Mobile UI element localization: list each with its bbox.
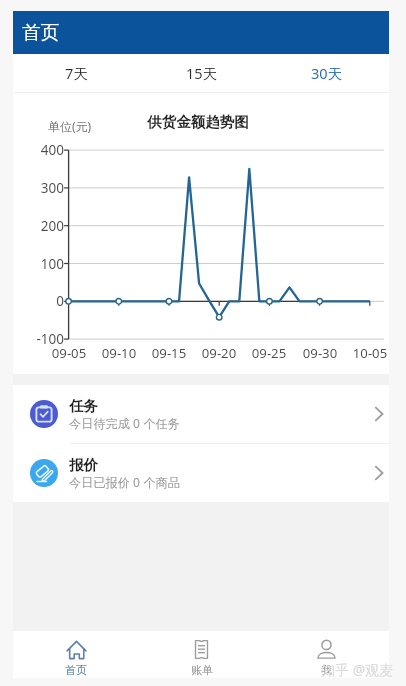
staticText: 今日待完成 0 个任务 (69, 415, 180, 432)
staticText: 0 (23, 292, 64, 310)
staticText: 300 (23, 179, 64, 197)
staticText: 09-10 (95, 344, 143, 362)
button[interactable]: 15天 (139, 54, 264, 92)
button[interactable]: 首页 (13, 11, 389, 54)
staticText: 7天 (65, 63, 88, 83)
button[interactable]: 任务 (13, 385, 389, 443)
staticText: 09-20 (195, 344, 243, 362)
staticText: 30天 (311, 63, 343, 83)
staticText: 09-25 (245, 344, 293, 362)
staticText: 首页 (65, 663, 87, 677)
staticText: 单位(元) (48, 118, 92, 134)
staticText: 09-05 (45, 344, 93, 362)
staticText: 今日已报价 0 个商品 (69, 474, 180, 491)
button[interactable]: 7天 (13, 54, 139, 92)
staticText: 400 (23, 141, 64, 159)
staticText: 任务 (69, 397, 98, 415)
staticText: 账单 (191, 663, 213, 677)
staticText: 09-30 (296, 344, 344, 362)
staticText: 知乎 @观麦 (321, 660, 394, 679)
staticText: 09-15 (145, 344, 193, 362)
button[interactable]: 账单 (139, 631, 264, 678)
staticText: 10-05 (346, 344, 394, 362)
staticText: 15天 (186, 63, 218, 83)
button[interactable]: 报价 (13, 444, 389, 502)
staticText: 我 (321, 663, 332, 677)
button[interactable]: 首页 (13, 631, 139, 678)
button[interactable]: 我 (264, 631, 389, 678)
staticText: -100 (23, 330, 64, 348)
staticText: 200 (23, 217, 64, 235)
button[interactable]: 30天 (264, 54, 389, 92)
staticText: 100 (23, 255, 64, 273)
staticText: 报价 (69, 456, 98, 474)
staticText: 供货金额趋势图 (144, 113, 252, 131)
staticText: 首页 (22, 21, 59, 44)
